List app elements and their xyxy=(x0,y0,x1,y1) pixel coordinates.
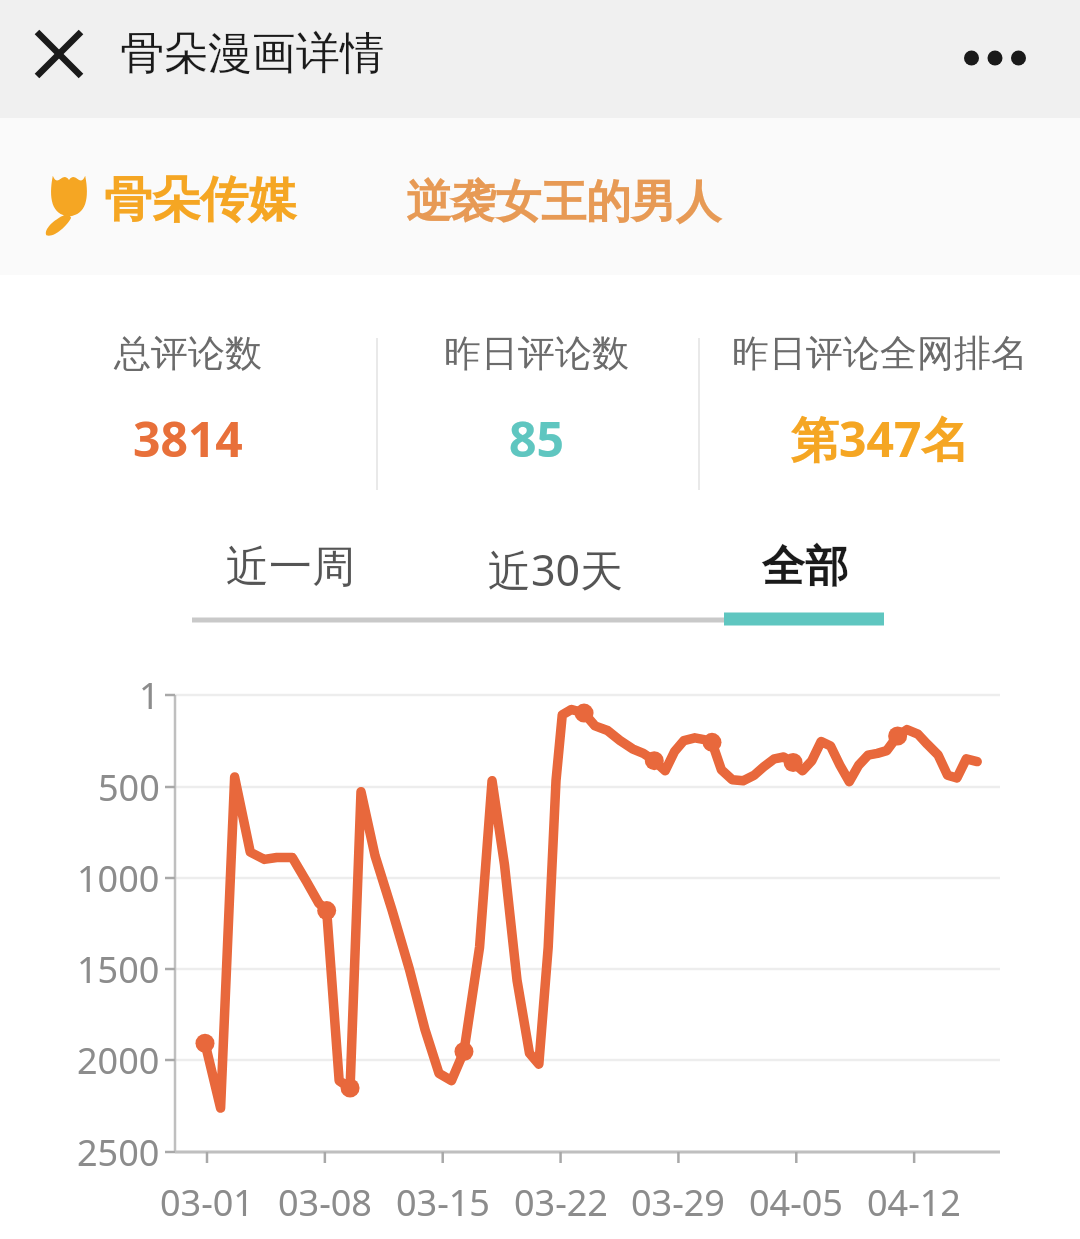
staticText: 03-29 xyxy=(631,1178,725,1227)
staticText: 全部 xyxy=(762,540,848,594)
staticText: 昨日评论全网排名 xyxy=(732,330,1028,377)
staticText: 1500 xyxy=(77,945,160,994)
staticText: 500 xyxy=(98,763,160,812)
staticText: 03-15 xyxy=(396,1178,490,1227)
staticText: 03-22 xyxy=(514,1178,608,1227)
staticText: 1 xyxy=(139,671,160,720)
staticText: 1000 xyxy=(77,854,160,903)
button[interactable]: 昨日评论全网排名 xyxy=(700,330,1060,472)
staticText: 04-05 xyxy=(749,1178,843,1227)
button[interactable]: 昨日评论数 xyxy=(396,330,676,471)
staticText: 3814 xyxy=(133,406,243,471)
button[interactable]: 近30天 xyxy=(458,540,654,640)
staticText: 第347名 xyxy=(791,406,970,472)
staticText: 骨朵传媒 xyxy=(104,170,296,230)
staticText: 04-12 xyxy=(867,1178,961,1227)
button[interactable]: 近一周 xyxy=(192,540,388,640)
staticText: 近一周 xyxy=(226,540,355,594)
staticText: 2000 xyxy=(77,1036,160,1085)
button[interactable]: 全部 xyxy=(725,540,885,640)
staticText: 03-01 xyxy=(160,1178,254,1227)
staticText: 2500 xyxy=(77,1128,160,1177)
button[interactable]: More options xyxy=(940,18,1050,98)
staticText: 近30天 xyxy=(488,540,624,599)
button[interactable]: Close xyxy=(20,15,98,93)
staticText: 85 xyxy=(509,406,564,471)
staticText: 03-08 xyxy=(278,1178,372,1227)
button[interactable]: 总评论数 xyxy=(20,330,356,471)
other: Gudou Media logo xyxy=(42,166,96,236)
staticText: 骨朵漫画详情 xyxy=(120,26,384,81)
staticText: 逆袭女王的男人 xyxy=(406,174,721,231)
staticText: 总评论数 xyxy=(114,330,262,377)
staticText: 昨日评论数 xyxy=(444,330,629,377)
